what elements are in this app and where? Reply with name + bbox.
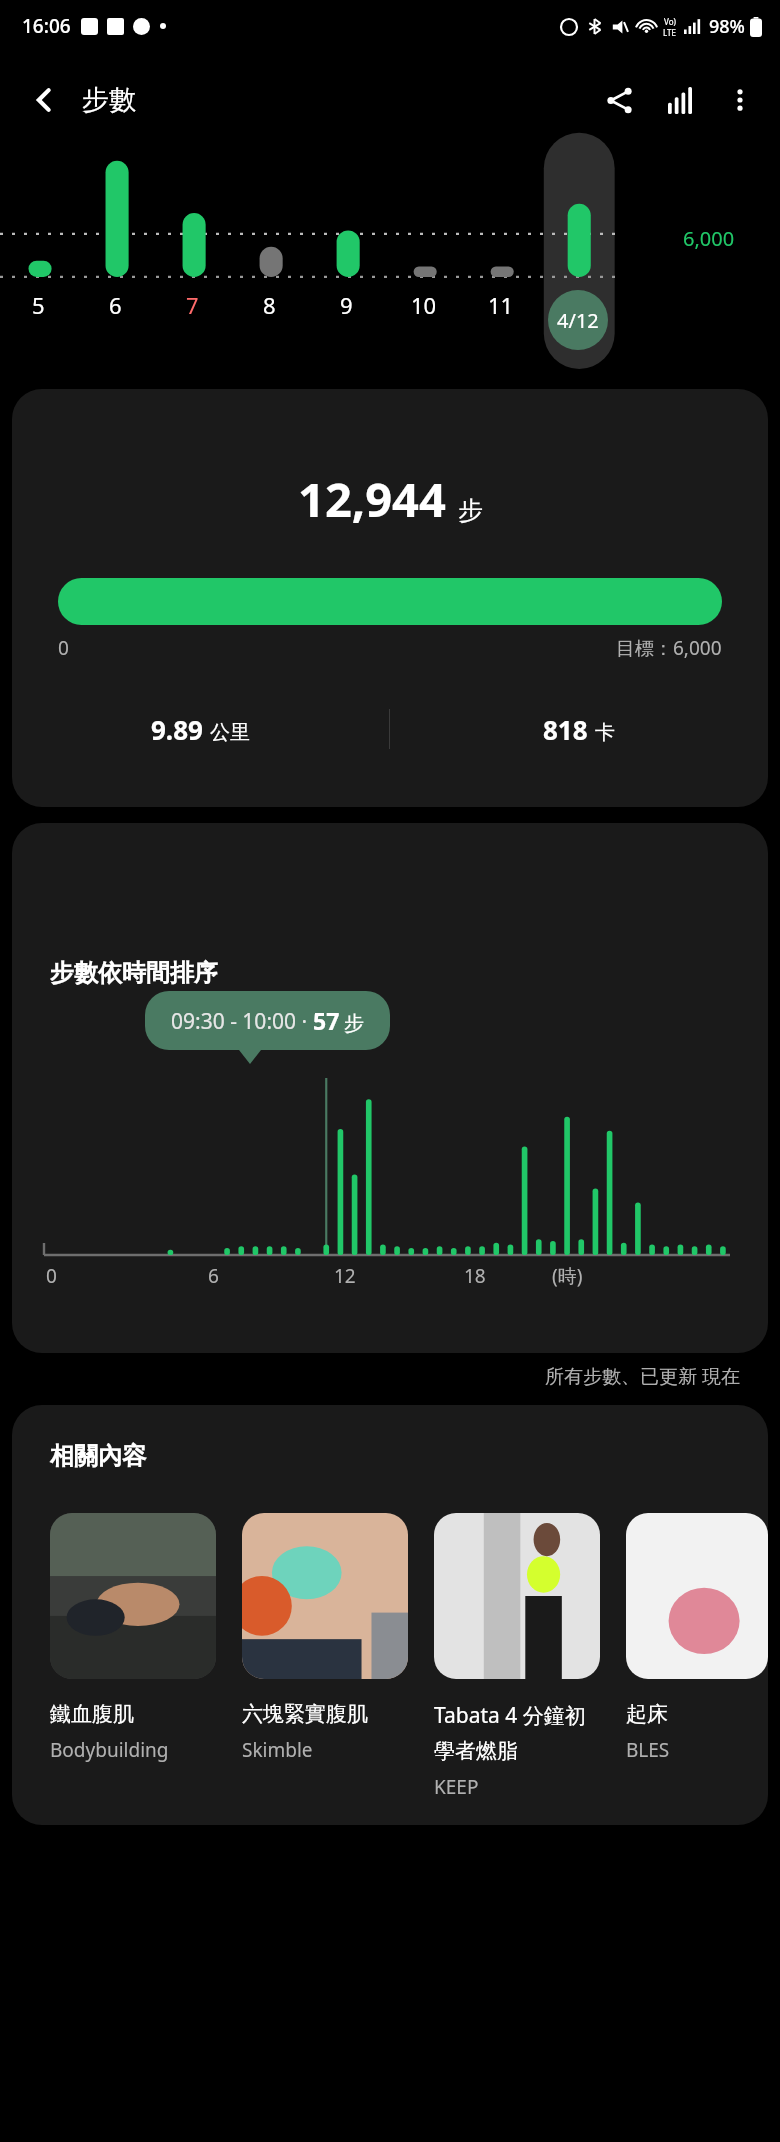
button[interactable]: Back [14, 70, 74, 130]
staticText: 步數 [82, 83, 136, 117]
staticText: 步 [344, 1011, 364, 1036]
button[interactable]: Chart [650, 69, 712, 131]
staticText: 步數依時間排序 [50, 958, 218, 988]
button[interactable]: 六塊緊實腹肌 [242, 1513, 408, 1763]
staticText: 7 [186, 290, 199, 320]
staticText: KEEP [434, 1774, 479, 1800]
staticText: 6 [208, 1263, 219, 1289]
staticText: LTE [663, 27, 676, 38]
staticText: 0 [58, 635, 69, 661]
staticText: 9.89 [151, 712, 203, 747]
staticText: BLES [626, 1737, 670, 1763]
staticText: 起床 [626, 1701, 668, 1727]
staticText: 5 [32, 290, 45, 320]
staticText: 6,000 [683, 225, 735, 252]
staticText: 98% [709, 14, 745, 39]
staticText: 4/12 [557, 307, 599, 334]
staticText: 步 [458, 495, 483, 526]
staticText: 6 [109, 290, 122, 320]
staticText: 09:30 - 10:00 · [171, 1007, 313, 1036]
button[interactable]: Share [588, 69, 650, 131]
staticText: Bodybuilding [50, 1737, 169, 1763]
button[interactable]: 12,944 [12, 389, 768, 807]
staticText: 所有步數、已更新 現在 [545, 1363, 740, 1389]
staticText: 0 [46, 1263, 57, 1289]
button[interactable]: 起床 [626, 1513, 768, 1763]
button[interactable]: Tabata 4 分鐘初 [434, 1513, 600, 1800]
button[interactable]: 鐵血腹肌 [50, 1513, 216, 1763]
button[interactable]: More options [712, 72, 768, 128]
staticText: 11 [488, 290, 514, 320]
staticText: 卡 [595, 720, 615, 745]
staticText: 12 [334, 1263, 356, 1289]
staticText: 12,944 [298, 467, 446, 531]
staticText: 18 [464, 1263, 486, 1289]
staticText: 公里 [210, 720, 250, 745]
staticText: 鐵血腹肌 [50, 1701, 134, 1727]
staticText: 8 [263, 290, 276, 320]
button[interactable]: 步數依時間排序 [12, 823, 768, 1353]
staticText: Skimble [242, 1737, 313, 1763]
staticText: 六塊緊實腹肌 [242, 1701, 368, 1727]
staticText: Tabata 4 分鐘初 [434, 1701, 586, 1730]
staticText: 學者燃脂 [434, 1738, 518, 1764]
staticText: 57 [313, 1005, 340, 1036]
staticText: 818 [543, 712, 588, 747]
staticText: Vo) [664, 16, 676, 27]
staticText: (時) [552, 1263, 583, 1289]
button[interactable]: 4/12 [548, 290, 608, 350]
staticText: 目標：6,000 [616, 635, 722, 661]
staticText: 10 [411, 290, 437, 320]
staticText: 9 [340, 290, 353, 320]
staticText: 相關內容 [50, 1441, 146, 1471]
staticText: 16:06 [22, 13, 71, 39]
